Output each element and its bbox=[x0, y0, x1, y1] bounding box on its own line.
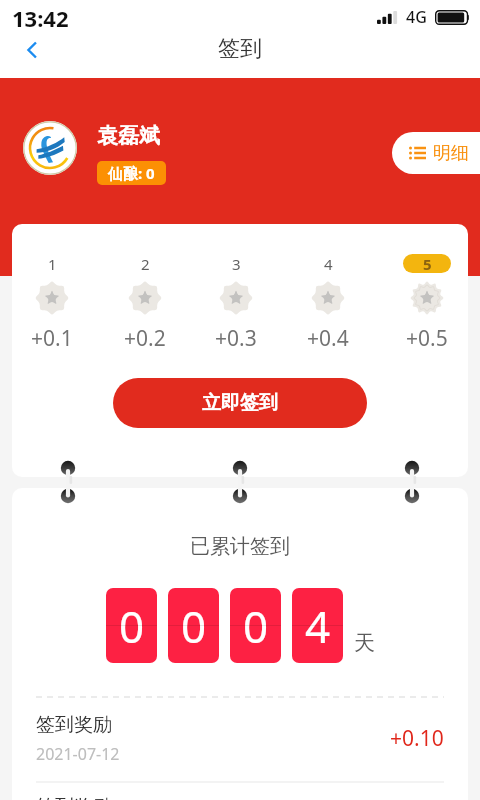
staticText: 0 bbox=[243, 596, 269, 656]
button[interactable]: 签到奖励 bbox=[12, 781, 468, 800]
staticText: 立即签到 bbox=[202, 391, 278, 415]
staticText: +0.3 bbox=[215, 324, 257, 353]
staticText: 2021-07-12 bbox=[36, 743, 120, 765]
staticText: 1 bbox=[48, 254, 57, 273]
staticText: 明细 bbox=[433, 142, 469, 165]
staticText: +0.1 bbox=[31, 324, 73, 353]
staticText: +0.2 bbox=[124, 324, 166, 353]
staticText: 4 bbox=[324, 254, 333, 273]
staticText: 4 bbox=[305, 596, 331, 656]
staticText: 签到奖励 bbox=[36, 713, 112, 737]
staticText: 0 bbox=[119, 596, 145, 656]
button[interactable]: 立即签到 bbox=[113, 378, 367, 428]
staticText: 签到奖励 bbox=[36, 795, 112, 800]
staticText: 4G bbox=[406, 6, 427, 28]
staticText: +0.10 bbox=[390, 724, 444, 753]
staticText: 0 bbox=[181, 596, 207, 656]
staticText: 袁磊斌 bbox=[97, 123, 160, 149]
staticText: 签到 bbox=[218, 35, 262, 63]
staticText: 2 bbox=[141, 254, 150, 273]
button[interactable]: 签到奖励 bbox=[12, 699, 468, 783]
staticText: 3 bbox=[232, 254, 241, 273]
staticText: 5 bbox=[423, 254, 432, 273]
staticText: +0.4 bbox=[307, 324, 349, 353]
button[interactable]: 明细 bbox=[392, 132, 480, 174]
staticText: 仙酿: 0 bbox=[108, 163, 155, 183]
staticText: 已累计签到 bbox=[12, 534, 468, 559]
staticText: +0.5 bbox=[406, 324, 448, 353]
button[interactable]: Back bbox=[8, 35, 48, 75]
staticText: 13:42 bbox=[12, 3, 69, 33]
staticText: 天 bbox=[354, 630, 375, 656]
